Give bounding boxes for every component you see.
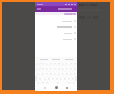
button[interactable] xyxy=(49,81,67,84)
button[interactable] xyxy=(67,76,71,81)
button[interactable] xyxy=(63,76,67,81)
button[interactable] xyxy=(71,81,77,84)
button[interactable] xyxy=(49,66,53,71)
button[interactable] xyxy=(65,71,69,76)
button[interactable] xyxy=(40,71,45,76)
button[interactable] xyxy=(61,61,65,66)
button[interactable] xyxy=(35,81,41,84)
button[interactable] xyxy=(65,61,69,66)
button[interactable] xyxy=(71,76,75,81)
button[interactable] xyxy=(37,76,42,81)
button[interactable] xyxy=(38,61,41,66)
button[interactable] xyxy=(47,76,51,81)
button[interactable] xyxy=(64,13,73,15)
button[interactable] xyxy=(35,36,77,42)
button[interactable] xyxy=(35,24,77,30)
button[interactable] xyxy=(65,66,69,71)
button[interactable] xyxy=(45,81,49,84)
button[interactable] xyxy=(45,71,49,76)
button[interactable] xyxy=(57,61,61,66)
button[interactable] xyxy=(35,6,77,12)
button[interactable] xyxy=(35,71,40,76)
button[interactable] xyxy=(51,76,55,81)
button[interactable] xyxy=(73,71,77,76)
button[interactable] xyxy=(53,61,57,66)
button[interactable] xyxy=(69,71,73,76)
button[interactable] xyxy=(55,76,59,81)
button[interactable] xyxy=(41,61,45,66)
button[interactable] xyxy=(38,66,41,71)
button[interactable] xyxy=(35,30,77,36)
button[interactable]: Home xyxy=(55,86,58,89)
button[interactable] xyxy=(67,81,71,84)
button[interactable] xyxy=(61,66,65,71)
button[interactable] xyxy=(57,71,61,76)
button[interactable] xyxy=(45,61,49,66)
button[interactable] xyxy=(73,61,77,66)
button[interactable] xyxy=(69,66,73,71)
button[interactable] xyxy=(49,61,53,66)
button[interactable] xyxy=(41,81,45,84)
button[interactable] xyxy=(53,71,57,76)
button[interactable] xyxy=(73,66,77,71)
button[interactable] xyxy=(35,66,38,71)
button[interactable] xyxy=(69,61,73,66)
button[interactable] xyxy=(45,66,49,71)
button[interactable] xyxy=(53,66,57,71)
button[interactable] xyxy=(61,71,65,76)
button[interactable] xyxy=(35,61,38,66)
button[interactable] xyxy=(42,76,47,81)
button[interactable] xyxy=(41,66,45,71)
button[interactable] xyxy=(49,71,53,76)
button[interactable] xyxy=(73,13,76,15)
button[interactable] xyxy=(59,76,63,81)
button[interactable] xyxy=(35,18,77,24)
button[interactable] xyxy=(57,66,61,71)
